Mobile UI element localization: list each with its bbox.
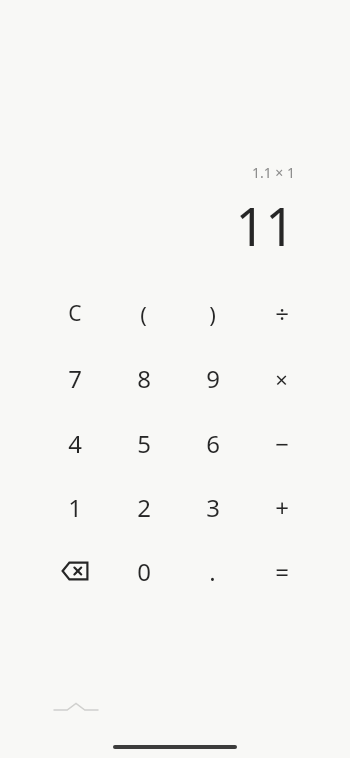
button[interactable]: − xyxy=(247,411,316,475)
button[interactable]: 3 xyxy=(178,475,247,539)
button[interactable]: 5 xyxy=(109,411,178,475)
button[interactable]: 7 xyxy=(41,346,109,411)
button[interactable]: 1 xyxy=(41,475,109,539)
staticText: . xyxy=(209,555,216,588)
button[interactable]: 6 xyxy=(178,411,247,475)
staticText: 1.1 × 1 xyxy=(251,163,295,182)
button[interactable]: 8 xyxy=(109,346,178,411)
button[interactable]: . xyxy=(178,539,247,603)
button[interactable]: 4 xyxy=(41,411,109,475)
staticText: 0 xyxy=(137,555,151,588)
button[interactable]: C xyxy=(41,281,109,346)
staticText: 8 xyxy=(137,362,151,395)
staticText: − xyxy=(275,427,289,460)
staticText: 5 xyxy=(137,427,151,460)
button[interactable]: 0 xyxy=(109,539,178,603)
button[interactable]: + xyxy=(247,475,316,539)
button[interactable]: ) xyxy=(178,281,247,346)
button[interactable]: = xyxy=(247,539,316,603)
staticText: 9 xyxy=(206,362,220,395)
button[interactable]: Backspace xyxy=(41,539,109,603)
staticText: ÷ xyxy=(275,297,289,330)
staticText: C xyxy=(68,299,82,328)
button[interactable]: 2 xyxy=(109,475,178,539)
staticText: 6 xyxy=(206,427,220,460)
staticText: 4 xyxy=(68,427,82,460)
button[interactable]: 9 xyxy=(178,346,247,411)
button[interactable]: ( xyxy=(109,281,178,346)
staticText: 7 xyxy=(68,362,82,395)
staticText: 1 xyxy=(68,491,82,524)
staticText: = xyxy=(275,555,289,588)
staticText: 2 xyxy=(137,491,151,524)
button[interactable]: Expand history xyxy=(47,692,105,722)
staticText: × xyxy=(275,364,288,394)
button[interactable]: ÷ xyxy=(247,281,316,346)
staticText: ( xyxy=(140,299,147,329)
staticText: 3 xyxy=(206,491,220,524)
staticText: + xyxy=(275,491,289,524)
staticText: 11 xyxy=(235,190,295,261)
button[interactable]: × xyxy=(247,346,316,411)
staticText: ) xyxy=(209,299,216,329)
